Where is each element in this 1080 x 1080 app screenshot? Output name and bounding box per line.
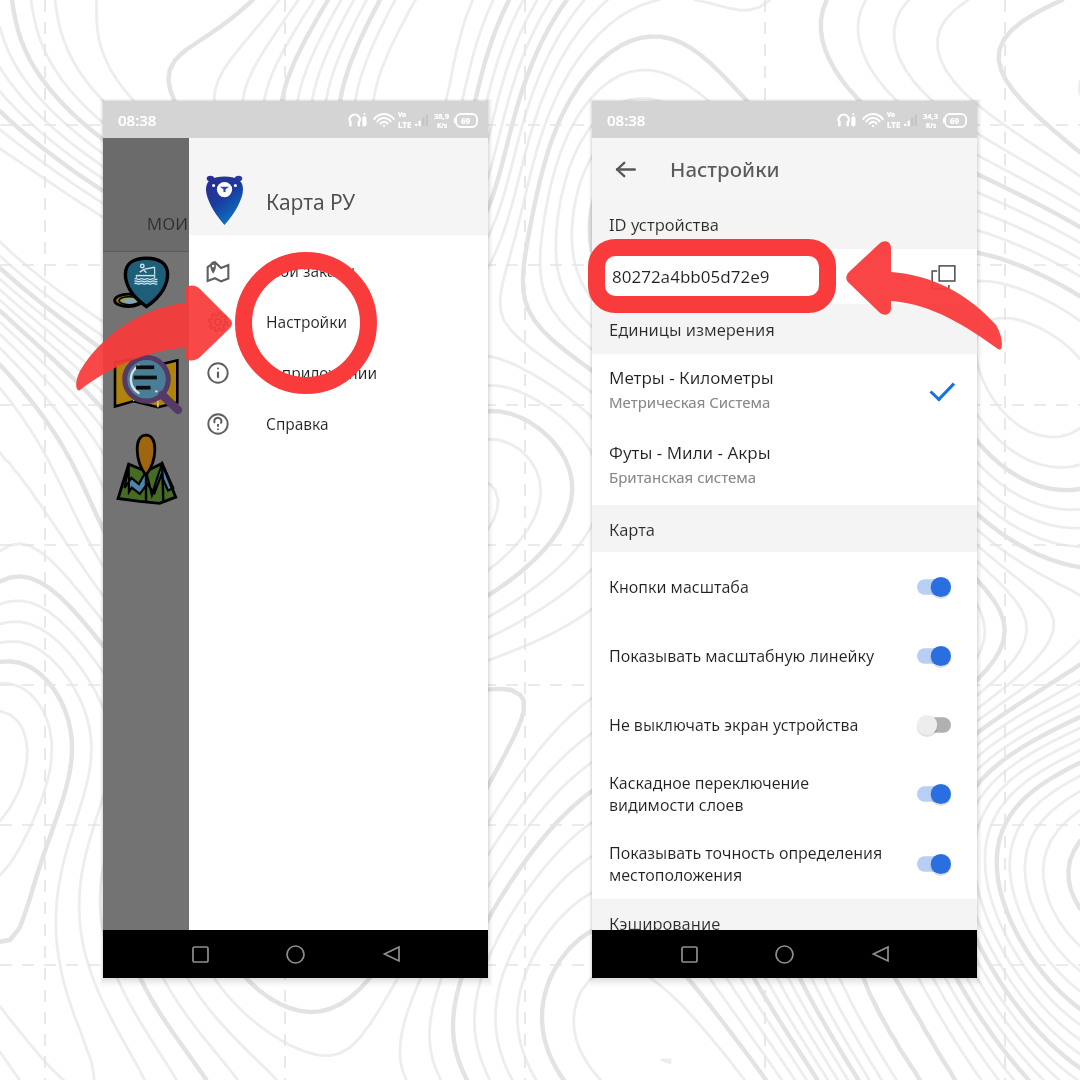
button[interactable]: Copy device ID [927, 261, 959, 293]
button[interactable]: Кнопки масштаба [592, 552, 977, 621]
button[interactable]: Recent apps [664, 930, 714, 978]
button[interactable]: Toggle off [917, 714, 951, 736]
staticText: 69 [950, 115, 960, 126]
button[interactable]: OpenStreetMap layer [113, 344, 180, 412]
staticText: ID устройства [609, 213, 720, 235]
staticText: МОИ [103, 212, 188, 235]
button[interactable]: My maps layer [115, 432, 177, 502]
staticText: Показывать точность определения [609, 842, 883, 864]
staticText: О приложении [266, 362, 378, 383]
staticText: Единицы измерения [609, 318, 775, 340]
button[interactable]: Back [855, 930, 905, 978]
staticText: 80272a4bb05d72e9 [612, 265, 770, 288]
button[interactable]: Toggle on [917, 576, 951, 598]
staticText: видимости слоев [609, 794, 744, 816]
staticText: Британская система [609, 467, 757, 487]
button[interactable]: Toggle on [917, 645, 951, 667]
button[interactable]: Справка [189, 398, 488, 449]
staticText: LTE [887, 119, 901, 130]
staticText: Настройки [670, 155, 780, 183]
staticText: Карта РУ [266, 188, 356, 217]
staticText: Справка [266, 413, 329, 434]
staticText: 38,9 [434, 111, 450, 121]
button[interactable]: Fishing spots layer [114, 257, 179, 319]
button[interactable]: Футы - Мили - Акры [592, 429, 977, 505]
staticText: 69 [461, 115, 471, 126]
staticText: Мои заказы [266, 260, 355, 281]
staticText: Метры - Километры [609, 366, 774, 389]
button[interactable]: Каскадное переключение [592, 759, 977, 829]
button[interactable]: Мои заказы [189, 245, 488, 296]
staticText: Показывать масштабную линейку [609, 645, 875, 667]
staticText: Настройки [266, 311, 348, 332]
button[interactable]: Home [270, 930, 320, 978]
staticText: местоположения [609, 864, 743, 886]
button[interactable]: 80272a4bb05d72e9 [592, 249, 977, 304]
button[interactable]: Показывать точность определения [592, 829, 977, 899]
staticText: Vo [398, 110, 407, 119]
staticText: LTE [398, 119, 412, 130]
staticText: 34,3 [923, 111, 939, 121]
button[interactable]: Recent apps [175, 930, 225, 978]
button[interactable]: Back [366, 930, 416, 978]
staticText: Не выключать экран устройства [609, 714, 859, 736]
staticText: Каскадное переключение [609, 772, 810, 794]
button[interactable]: Toggle on [917, 783, 951, 805]
staticText: Vo [887, 110, 896, 119]
staticText: Футы - Мили - Акры [609, 441, 771, 464]
staticText: K/s [926, 121, 937, 130]
button[interactable]: Не выключать экран устройства [592, 690, 977, 759]
staticText: K/s [437, 121, 448, 130]
button[interactable]: Home [759, 930, 809, 978]
button[interactable]: Метры - Километры [592, 354, 977, 429]
button[interactable]: Toggle on [917, 853, 951, 875]
staticText: 08:38 [118, 110, 157, 130]
staticText: Метрическая Система [609, 392, 771, 412]
staticText: Кэширование [609, 912, 721, 934]
button[interactable]: О приложении [189, 347, 488, 398]
staticText: Карта [609, 518, 656, 540]
button[interactable]: Настройки [189, 296, 488, 347]
staticText: Кнопки масштаба [609, 576, 749, 598]
button[interactable]: Back [601, 145, 649, 193]
button[interactable]: Показывать масштабную линейку [592, 621, 977, 690]
staticText: 08:38 [607, 110, 646, 130]
